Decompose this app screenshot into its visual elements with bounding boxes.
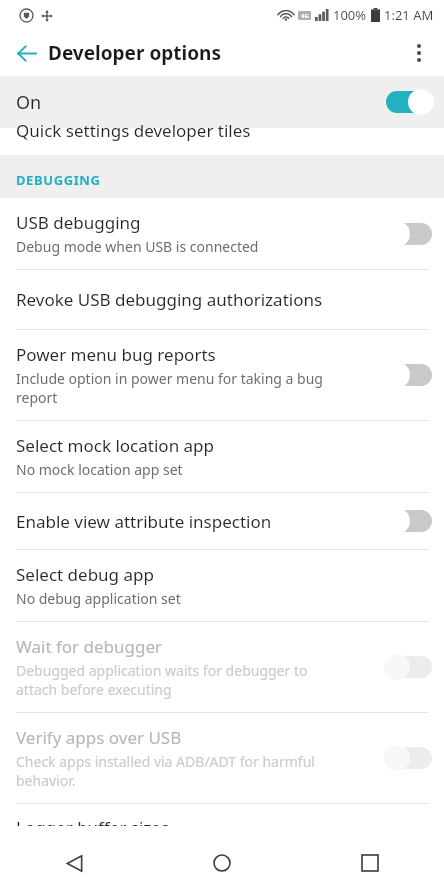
button[interactable]: Logger buffer sizes [0, 804, 444, 826]
staticText: Select debug app [16, 563, 154, 586]
button[interactable]: Back [0, 838, 148, 888]
button[interactable]: Back [6, 33, 46, 73]
button[interactable]: Select debug app [0, 550, 444, 621]
button[interactable]: Wait for debugger [0, 622, 444, 712]
staticText: Enable view attribute inspection [16, 510, 272, 533]
button[interactable]: More options [398, 32, 440, 74]
staticText: Power menu bug reports [16, 343, 216, 366]
staticText: DEBUGGING [16, 171, 101, 189]
staticText: Quick settings developer tiles [16, 119, 251, 142]
button[interactable]: USB debugging [0, 198, 444, 269]
button[interactable]: On [0, 76, 444, 128]
button[interactable]: Revoke USB debugging authorizations [0, 270, 444, 329]
button[interactable]: Home [148, 838, 296, 888]
staticText: Include option in power menu for taking … [16, 369, 323, 407]
staticText: No debug application set [16, 589, 181, 608]
button[interactable]: Power menu bug reports [0, 330, 444, 420]
button[interactable]: Quick settings developer tiles [0, 128, 444, 155]
staticText: Select mock location app [16, 434, 214, 457]
staticText: No mock location app set [16, 460, 183, 479]
staticText: Developer options [48, 40, 221, 66]
staticText: Debugged application waits for debugger … [16, 661, 308, 699]
staticText: Verify apps over USB [16, 726, 182, 749]
button[interactable]: Enable view attribute inspection [0, 493, 444, 549]
button[interactable]: Recent apps [296, 838, 444, 888]
staticText: Debug mode when USB is connected [16, 237, 259, 256]
button[interactable]: Verify apps over USB [0, 713, 444, 803]
staticText: 1:21 AM [384, 6, 434, 24]
staticText: On [16, 90, 384, 115]
staticText: 4G [301, 12, 309, 20]
staticText: USB debugging [16, 211, 141, 234]
button[interactable]: Select mock location app [0, 421, 444, 492]
staticText: Revoke USB debugging authorizations [16, 288, 323, 311]
staticText: 100% [333, 6, 367, 24]
staticText: Logger buffer sizes [16, 816, 170, 826]
staticText: Check apps installed via ADB/ADT for har… [16, 752, 315, 790]
staticText: Wait for debugger [16, 635, 163, 658]
